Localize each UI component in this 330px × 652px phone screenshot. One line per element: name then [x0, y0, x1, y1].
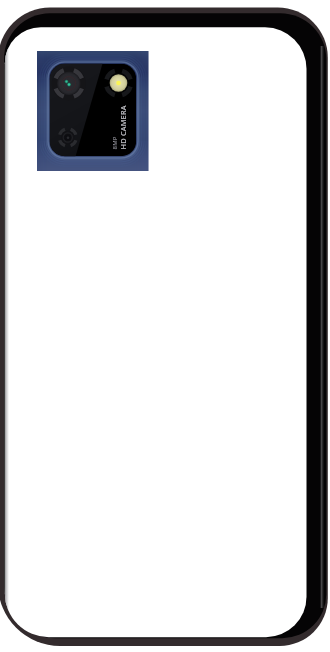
other: Phone rear view with camera module: [0, 0, 330, 652]
